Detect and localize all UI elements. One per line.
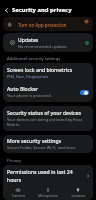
staticText: No recommended updates: [18, 44, 67, 49]
staticText: Microphone: [38, 193, 58, 198]
button[interactable]: Microphone: [33, 186, 63, 200]
button[interactable]: Screen lock and biometrics: [3, 63, 93, 82]
staticText: Location: [71, 193, 86, 198]
button[interactable]: Camera: [3, 186, 33, 200]
staticText: Auto Blocker: [7, 86, 39, 93]
button[interactable]: Auto Blocker: [3, 82, 93, 102]
staticText: Your phone is protected.: [7, 93, 52, 98]
button[interactable]: Updates: [3, 33, 93, 52]
staticText: Permissions used in last 24 hours: [7, 169, 86, 183]
staticText: Camera: [12, 193, 25, 198]
button[interactable]: Permissions used in last 24 hours: [3, 165, 93, 186]
staticText: Additional security settings: [7, 56, 61, 62]
button[interactable]: Security status of your devices: [3, 106, 93, 131]
button[interactable]: Turn on App protection: [3, 17, 93, 31]
staticText: Updates: [18, 37, 39, 44]
staticText: More security settings: [7, 138, 62, 145]
staticText: Turn on App protection: [18, 22, 67, 28]
button[interactable]: Location: [63, 186, 93, 200]
staticText: Screen lock and biometrics: [7, 67, 73, 74]
button[interactable]: Auto Blocker toggle: [80, 90, 89, 95]
staticText: Secure Folder, Secure Wi-Fi, and more: [7, 145, 76, 150]
staticText: Privacy: [7, 158, 21, 164]
button[interactable]: Navigate up: [2, 6, 11, 15]
staticText: PIN, Face, Fingerprints: [7, 74, 49, 79]
staticText: Your devices are being protected by Knox…: [7, 117, 89, 128]
button[interactable]: More security settings: [3, 135, 93, 153]
staticText: Security status of your devices: [7, 110, 81, 117]
staticText: Security and privacy: [12, 6, 72, 14]
